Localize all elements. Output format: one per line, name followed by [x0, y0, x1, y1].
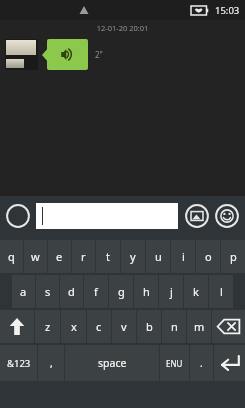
- button[interactable]: &123: [0, 345, 37, 381]
- button[interactable]: ENU: [160, 345, 189, 381]
- button[interactable]: e: [48, 240, 71, 273]
- button[interactable]: ,: [38, 345, 64, 381]
- staticText: u: [155, 249, 162, 264]
- button[interactable]: w: [24, 240, 47, 273]
- button[interactable]: c: [87, 310, 111, 343]
- staticText: 15:03: [215, 4, 240, 17]
- staticText: w: [31, 249, 40, 264]
- button[interactable]: s: [36, 275, 59, 308]
- button[interactable]: Emoji: [214, 203, 240, 229]
- button[interactable]: b: [137, 310, 161, 343]
- staticText: e: [56, 249, 63, 264]
- button[interactable]: n: [162, 310, 186, 343]
- staticText: c: [96, 319, 102, 334]
- staticText: 12-01-20 20:01: [0, 23, 245, 33]
- staticText: o: [205, 249, 212, 264]
- button[interactable]: space: [65, 345, 159, 381]
- staticText: x: [71, 319, 77, 334]
- staticText: 2": [95, 49, 103, 60]
- staticText: ,: [50, 356, 53, 370]
- staticText: m: [194, 319, 205, 334]
- button[interactable]: Send image: [184, 203, 210, 229]
- staticText: j: [170, 284, 173, 299]
- button[interactable]: Backspace: [212, 310, 245, 343]
- other: Play voice message: [60, 47, 75, 62]
- button[interactable]: f: [84, 275, 108, 308]
- button[interactable]: Shift: [0, 310, 34, 343]
- button[interactable]: x: [61, 310, 86, 343]
- staticText: ENU: [166, 358, 183, 369]
- button[interactable]: v: [112, 310, 136, 343]
- staticText: t: [106, 249, 110, 264]
- button[interactable]: h: [134, 275, 158, 308]
- staticText: .: [200, 356, 203, 370]
- button[interactable]: a: [12, 275, 35, 308]
- staticText: &123: [7, 357, 31, 370]
- button[interactable]: j: [159, 275, 183, 308]
- staticText: h: [143, 284, 150, 299]
- staticText: b: [146, 319, 153, 334]
- staticText: i: [182, 249, 185, 264]
- staticText: z: [45, 319, 51, 334]
- button[interactable]: i: [171, 240, 195, 273]
- button[interactable]: r: [72, 240, 95, 273]
- button[interactable]: k: [184, 275, 208, 308]
- staticText: q: [8, 249, 15, 264]
- button[interactable]: Voice input: [5, 203, 31, 229]
- button[interactable]: d: [60, 275, 83, 308]
- button[interactable]: u: [146, 240, 170, 273]
- button[interactable]: z: [35, 310, 60, 343]
- button[interactable]: o: [196, 240, 220, 273]
- button[interactable]: Enter: [214, 345, 245, 381]
- staticText: k: [193, 284, 199, 299]
- button[interactable]: .: [190, 345, 213, 381]
- button[interactable]: m: [187, 310, 211, 343]
- staticText: y: [130, 249, 136, 264]
- button[interactable]: g: [109, 275, 133, 308]
- staticText: p: [230, 249, 237, 264]
- button[interactable]: p: [221, 240, 245, 273]
- button[interactable]: q: [0, 240, 23, 273]
- staticText: v: [121, 319, 127, 334]
- button[interactable]: l: [209, 275, 233, 308]
- staticText: l: [220, 284, 223, 299]
- staticText: d: [68, 284, 75, 299]
- staticText: space: [98, 356, 127, 370]
- staticText: n: [171, 319, 178, 334]
- button[interactable]: t: [96, 240, 120, 273]
- button[interactable]: y: [121, 240, 145, 273]
- button[interactable]: [36, 203, 178, 229]
- button[interactable]: Play voice message: [47, 39, 88, 70]
- staticText: a: [20, 284, 27, 299]
- staticText: r: [81, 249, 86, 264]
- staticText: g: [118, 284, 125, 299]
- staticText: s: [45, 284, 51, 299]
- staticText: f: [94, 284, 98, 299]
